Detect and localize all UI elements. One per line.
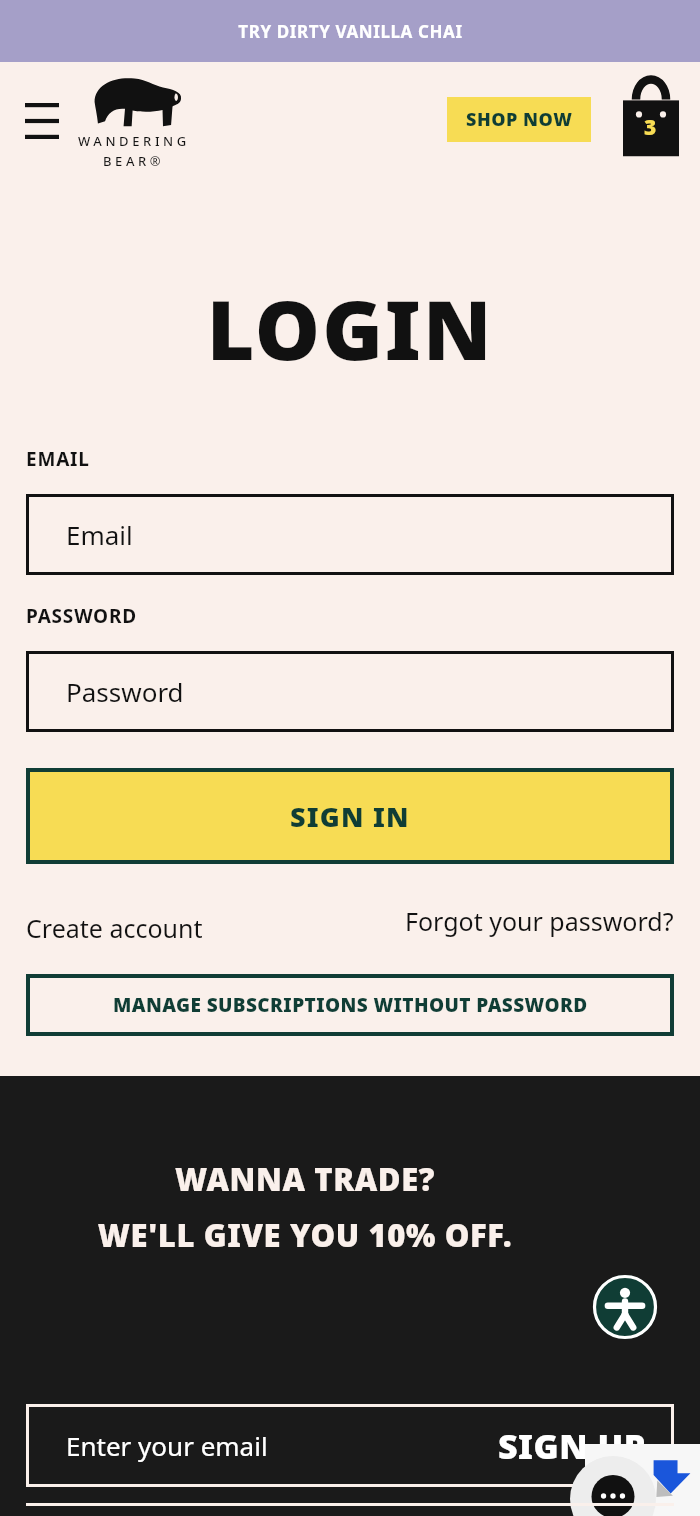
button[interactable]: SIGN UP [498,1423,646,1469]
staticText: BEAR® [103,152,165,170]
button[interactable]: Accessibility options [592,1274,658,1340]
button[interactable]: SIGN IN [26,768,674,864]
button[interactable]: Menu [14,93,70,149]
button[interactable]: Open chat [570,1456,656,1516]
button[interactable]: Create account [26,911,203,945]
staticText: EMAIL [26,446,90,472]
staticText: Password [66,674,184,709]
staticText: Forgot your password? [405,904,674,938]
staticText: Create account [26,911,203,945]
staticText: WE'LL GIVE YOU 10% OFF. [0,1214,610,1256]
staticText: WANDERING [78,132,190,150]
staticText: SIGN UP [498,1423,646,1469]
staticText: TRY DIRTY VANILLA CHAI [238,20,463,43]
staticText: 3 [644,113,657,142]
button[interactable]: TRY DIRTY VANILLA CHAI [0,0,700,62]
button[interactable]: Password [26,651,674,732]
staticText: WANNA TRADE? [0,1158,610,1200]
button[interactable]: SHOP NOW [447,97,591,142]
staticText: Enter your email [66,1428,268,1463]
staticText: SHOP NOW [466,107,573,132]
button[interactable]: Email [26,494,674,575]
staticText: MANAGE SUBSCRIPTIONS WITHOUT PASSWORD [113,992,588,1018]
button[interactable]: Forgot your password? [405,904,674,938]
button[interactable]: WANDERING [78,73,190,170]
button[interactable]: MANAGE SUBSCRIPTIONS WITHOUT PASSWORD [26,974,674,1036]
button[interactable]: Cart, 3 items [615,81,685,157]
staticText: LOGIN [0,272,700,384]
staticText: PASSWORD [26,603,137,629]
staticText: SIGN IN [290,798,410,835]
staticText: Email [66,517,133,552]
